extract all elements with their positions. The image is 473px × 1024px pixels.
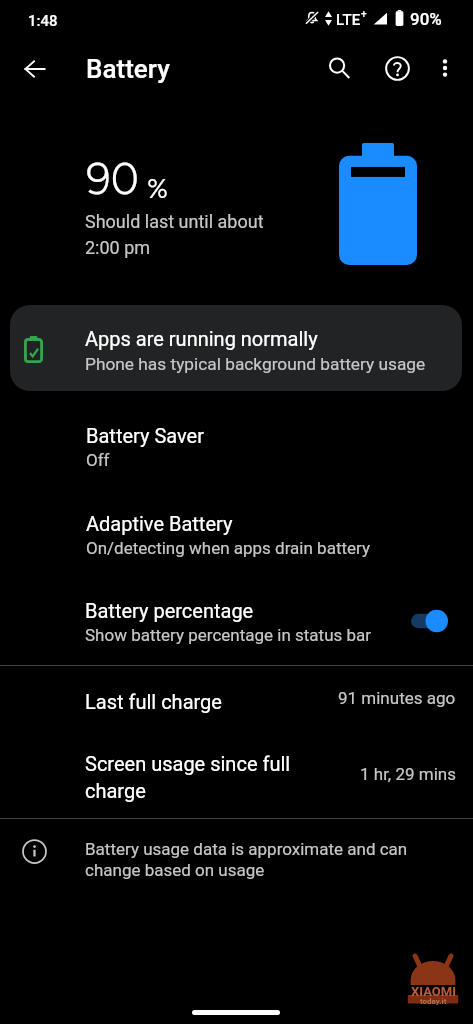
button[interactable]: More options: [422, 45, 468, 91]
staticText: Battery percentage: [85, 599, 254, 622]
staticText: Phone has typical background battery usa…: [85, 354, 426, 374]
button[interactable]: Last full charge: [0, 678, 473, 725]
staticText: Screen usage since full charge: [85, 752, 344, 803]
staticText: 91 minutes ago: [338, 688, 456, 708]
staticText: Off: [86, 450, 110, 470]
staticText: Should last until about 2:00 pm: [85, 211, 264, 258]
staticText: Battery usage data is approximate and ca…: [85, 839, 408, 880]
staticText: +: [361, 9, 367, 21]
staticText: On/detecting when apps drain battery: [86, 538, 370, 558]
button[interactable]: Help: [373, 44, 421, 92]
staticText: Last full charge: [85, 690, 222, 713]
staticText: XIAOMI: [411, 984, 456, 999]
staticText: Battery Saver: [86, 424, 204, 447]
staticText: Battery: [86, 54, 170, 84]
button[interactable]: Apps are running normally: [10, 305, 462, 391]
staticText: %: [147, 172, 168, 204]
staticText: Show battery percentage in status bar: [85, 625, 372, 645]
button[interactable]: Screen usage since full charge: [0, 740, 473, 815]
staticText: 90: [86, 152, 139, 205]
staticText: 1:48: [28, 12, 58, 30]
button[interactable]: Battery Saver: [0, 412, 473, 484]
staticText: today.it: [420, 997, 447, 1006]
staticText: LTE: [336, 11, 361, 29]
button[interactable]: Search: [315, 44, 363, 92]
staticText: Apps are running normally: [85, 327, 318, 350]
staticText: 90%: [410, 9, 442, 29]
staticText: 1 hr, 29 mins: [360, 764, 456, 784]
button[interactable]: Adaptive Battery: [0, 500, 473, 572]
staticText: Adaptive Battery: [86, 512, 233, 535]
button[interactable]: Back: [10, 45, 58, 93]
button[interactable]: Battery percentage: [0, 587, 473, 659]
